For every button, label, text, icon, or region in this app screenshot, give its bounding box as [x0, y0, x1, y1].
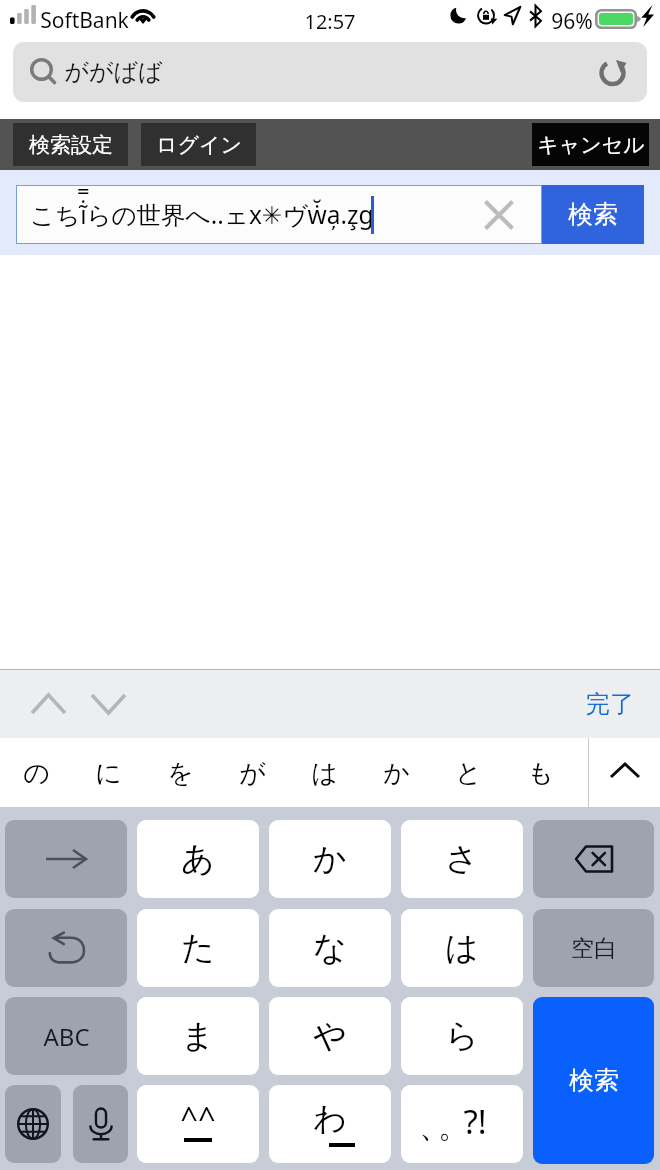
button[interactable]: 完了 — [576, 677, 644, 731]
staticText: 空白 — [571, 934, 617, 963]
staticText: ^^ — [180, 1096, 216, 1138]
staticText: 検索 — [568, 199, 618, 230]
other: Search — [30, 57, 60, 87]
button[interactable]: Switch keyboard — [5, 1085, 61, 1163]
staticText: 検索設定 — [29, 132, 113, 158]
other: Voice input — [89, 1107, 113, 1141]
staticText: か — [383, 757, 410, 790]
staticText: の — [23, 757, 50, 790]
button[interactable]: 空白 — [533, 909, 654, 987]
button[interactable]: も — [504, 738, 576, 808]
staticText: ががばば — [64, 57, 163, 87]
staticText: 完了 — [586, 689, 634, 719]
staticText: ?! — [463, 1099, 487, 1144]
button[interactable]: ^^ — [137, 1085, 259, 1163]
staticText: ら — [445, 1015, 479, 1057]
staticText: を — [167, 757, 194, 790]
staticText: は — [445, 927, 479, 969]
button[interactable]: 検索設定 — [13, 123, 128, 166]
other: Next character — [46, 848, 86, 870]
other: Switch keyboard — [17, 1108, 49, 1140]
button[interactable]: Undo — [5, 909, 127, 987]
button[interactable]: ABC — [5, 997, 127, 1075]
button[interactable]: に — [72, 738, 144, 808]
button[interactable]: Next field — [80, 674, 136, 734]
other: Reload — [599, 57, 629, 87]
staticText: わ — [313, 1098, 347, 1140]
button[interactable]: や — [269, 997, 391, 1075]
button[interactable]: た — [137, 909, 259, 987]
button[interactable]: さ — [401, 820, 523, 898]
button[interactable]: か — [360, 738, 432, 808]
staticText: た — [181, 927, 215, 969]
button[interactable]: か — [269, 820, 391, 898]
staticText: こちı̃̇̿らの世界へ..ェx✳ヴẇ̆a̦.z̧g — [30, 198, 374, 231]
button[interactable]: は — [288, 738, 360, 808]
staticText: 、 — [419, 1107, 450, 1146]
staticText: あ — [181, 838, 215, 880]
button[interactable]: ま — [137, 997, 259, 1075]
staticText: ま — [181, 1015, 215, 1057]
staticText: 。 — [438, 1107, 469, 1146]
button[interactable]: わ — [269, 1085, 391, 1163]
staticText: ABC — [43, 1020, 90, 1053]
button[interactable]: の — [0, 738, 72, 808]
button[interactable]: ら — [401, 997, 523, 1075]
button[interactable]: 検索 — [542, 185, 644, 244]
button[interactable]: キャンセル — [532, 123, 649, 166]
button[interactable]: 検索 — [533, 997, 654, 1164]
staticText: ログイン — [156, 132, 242, 158]
button[interactable]: が — [216, 738, 288, 808]
button[interactable]: 、 — [401, 1085, 523, 1163]
button[interactable]: Previous field — [20, 674, 76, 734]
staticText: 12:57 — [304, 8, 356, 35]
staticText: は — [311, 757, 338, 790]
staticText: SoftBank — [40, 6, 129, 35]
staticText: 検索 — [569, 1065, 619, 1096]
staticText: に — [95, 757, 122, 790]
button[interactable]: Voice input — [73, 1085, 128, 1163]
staticText: や — [313, 1015, 347, 1057]
staticText: か — [313, 838, 347, 880]
staticText: が — [239, 757, 266, 790]
button[interactable]: な — [269, 909, 391, 987]
staticText: な — [313, 927, 347, 969]
other: Backspace — [574, 845, 614, 873]
button[interactable]: Backspace — [533, 820, 654, 898]
other: Undo — [48, 932, 84, 964]
staticText: さ — [445, 838, 479, 880]
button[interactable]: を — [144, 738, 216, 808]
button[interactable]: Next character — [5, 820, 127, 898]
button[interactable]: Expand candidates — [589, 738, 660, 808]
button[interactable]: と — [432, 738, 504, 808]
other: Clear text — [484, 200, 514, 230]
button[interactable]: Search — [13, 42, 647, 102]
button[interactable]: ログイン — [141, 123, 256, 166]
staticText: と — [455, 757, 482, 790]
staticText: 96% — [551, 7, 593, 36]
staticText: も — [527, 757, 554, 790]
button[interactable]: こちı̃̇̿らの世界へ..ェx✳ヴẇ̆a̦.z̧g — [16, 185, 542, 244]
button[interactable]: は — [401, 909, 523, 987]
button[interactable]: あ — [137, 820, 259, 898]
staticText: キャンセル — [537, 132, 645, 158]
